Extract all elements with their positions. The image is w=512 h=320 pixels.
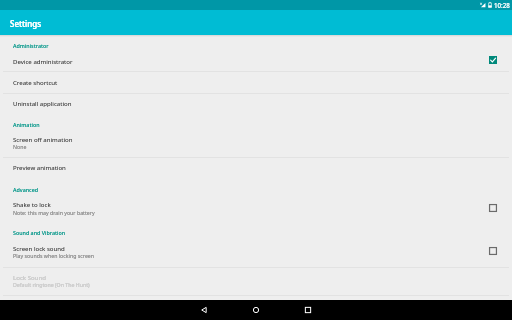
staticText: Settings bbox=[10, 18, 42, 29]
staticText: Screen off animation bbox=[13, 135, 73, 143]
staticText: Sound and Vibration bbox=[13, 229, 66, 236]
staticText: Uninstall application bbox=[13, 99, 72, 107]
staticText: Settings bbox=[10, 18, 42, 29]
staticText: Play sounds when locking screen bbox=[13, 252, 95, 259]
staticText: Shake to lock bbox=[13, 200, 51, 208]
staticText: None bbox=[13, 143, 27, 150]
staticText: Create shortcut bbox=[13, 78, 58, 86]
staticText: Animation bbox=[13, 121, 40, 128]
staticText: 10:28 bbox=[494, 1, 510, 9]
staticText: Shake to lock bbox=[13, 200, 51, 208]
staticText: Device administrator bbox=[13, 57, 73, 65]
staticText: Default ringtone (On The Hunt) bbox=[13, 281, 90, 288]
staticText: Lock Sound bbox=[13, 273, 46, 281]
staticText: Screen lock sound bbox=[13, 244, 65, 252]
staticText: Note: this may drain your battery bbox=[13, 209, 95, 216]
button[interactable]: Back bbox=[178, 300, 230, 320]
staticText: Note: this may drain your battery bbox=[13, 209, 95, 216]
staticText: Default ringtone (On The Hunt) bbox=[13, 281, 90, 288]
staticText: Advanced bbox=[13, 186, 39, 193]
staticText: Play sounds when locking screen bbox=[13, 252, 95, 259]
staticText: Screen lock sound bbox=[13, 244, 65, 252]
staticText: Sound and Vibration bbox=[13, 229, 66, 236]
button[interactable]: Screen off animation bbox=[0, 131, 512, 157]
staticText: Preview animation bbox=[13, 163, 66, 171]
button[interactable]: Recents bbox=[282, 300, 334, 320]
staticText: Create shortcut bbox=[13, 78, 58, 86]
staticText: Administrator bbox=[13, 42, 49, 49]
button[interactable]: Preview animation bbox=[0, 157, 512, 178]
button[interactable]: Device administrator bbox=[0, 52, 512, 71]
button[interactable]: Uninstall application bbox=[0, 93, 512, 114]
staticText: Screen off animation bbox=[13, 135, 73, 143]
staticText: Lock Sound bbox=[13, 273, 46, 281]
button[interactable]: Home bbox=[230, 300, 282, 320]
staticText: Device administrator bbox=[13, 57, 73, 65]
button[interactable]: Create shortcut bbox=[0, 71, 512, 92]
button[interactable]: Shake to lock bbox=[0, 196, 512, 222]
staticText: Advanced bbox=[13, 186, 39, 193]
staticText: Uninstall application bbox=[13, 99, 72, 107]
staticText: Preview animation bbox=[13, 163, 66, 171]
button[interactable]: Lock Sound bbox=[0, 267, 512, 296]
staticText: Administrator bbox=[13, 42, 49, 49]
staticText: Animation bbox=[13, 121, 40, 128]
staticText: None bbox=[13, 143, 27, 150]
button[interactable]: Screen lock sound bbox=[0, 239, 512, 267]
